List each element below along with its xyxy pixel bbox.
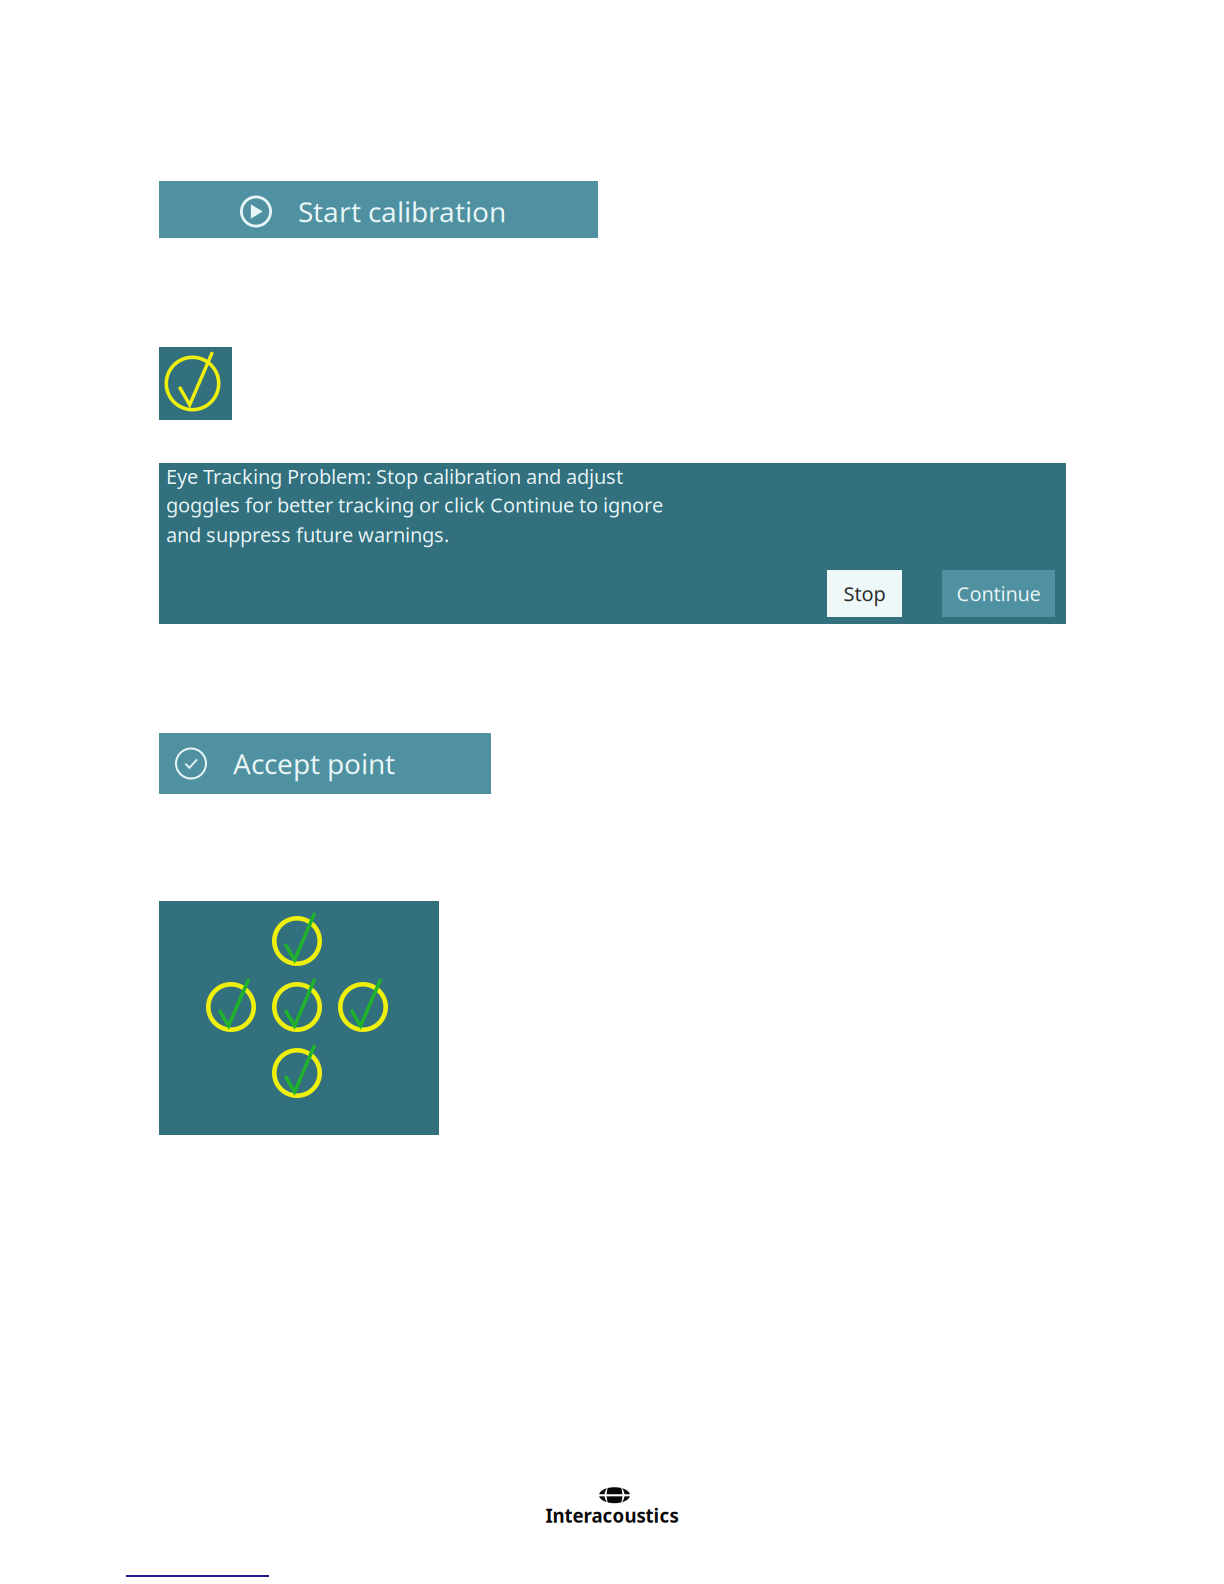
staticText: Stop bbox=[843, 580, 885, 607]
staticText: Interacoustics bbox=[545, 1503, 678, 1528]
button[interactable]: Start calibration bbox=[159, 181, 598, 238]
button[interactable]: Continue bbox=[942, 570, 1055, 617]
staticText: goggles for better tracking or click Con… bbox=[166, 492, 663, 518]
staticText: Start calibration bbox=[298, 193, 506, 230]
button[interactable]: Stop bbox=[827, 570, 902, 617]
staticText: and suppress future warnings. bbox=[166, 521, 449, 548]
staticText: Eye Tracking Problem: Stop calibration a… bbox=[166, 463, 623, 490]
staticText: Continue bbox=[956, 580, 1040, 607]
staticText: Accept point bbox=[233, 745, 395, 782]
button[interactable]: Accept point bbox=[159, 733, 491, 794]
